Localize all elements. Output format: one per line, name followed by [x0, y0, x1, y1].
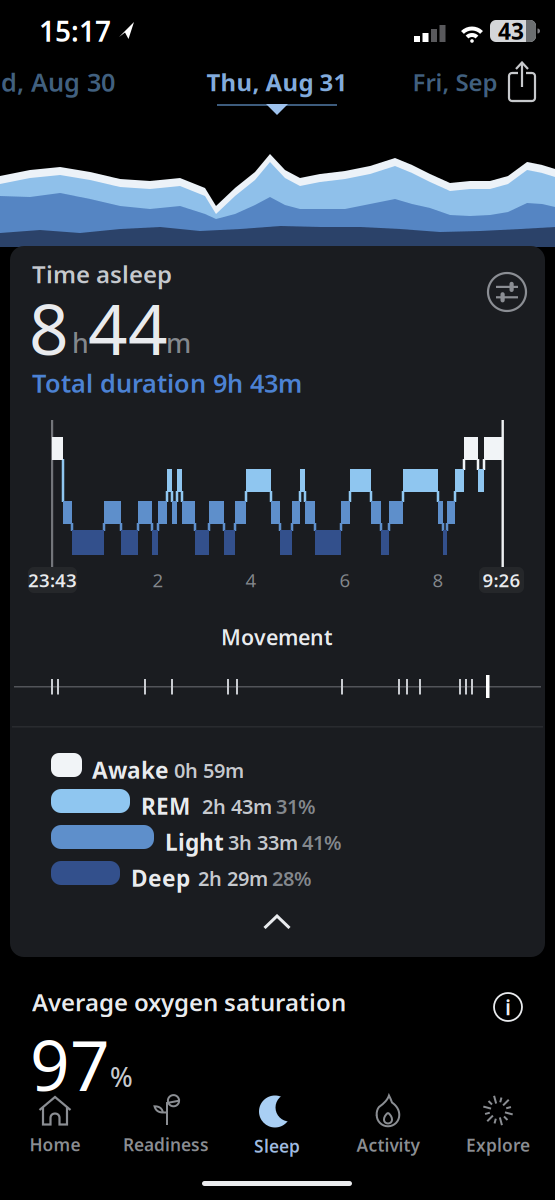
button[interactable] — [263, 914, 291, 929]
button[interactable]: Sleep — [225, 1092, 329, 1157]
staticText: Awake — [92, 755, 169, 785]
button[interactable]: Fri, Sep — [412, 66, 497, 98]
button[interactable]: d, Aug 30 — [1, 65, 115, 99]
staticText: 28% — [272, 865, 312, 892]
staticText: 9:26 — [482, 568, 520, 592]
staticText: 41% — [302, 829, 342, 856]
staticText: 6 — [339, 568, 350, 592]
staticText: Time asleep — [32, 258, 172, 290]
staticText: Fri, Sep — [412, 66, 497, 98]
button[interactable]: Home — [3, 1094, 107, 1156]
button[interactable]: Activity — [336, 1093, 440, 1156]
staticText: m — [166, 325, 191, 360]
button[interactable]: Thu, Aug 31 — [206, 66, 347, 98]
staticText: 15:17 — [39, 12, 111, 50]
staticText: Explore — [466, 1133, 530, 1156]
staticText: 8 — [29, 282, 69, 374]
staticText: 2 — [152, 568, 163, 592]
staticText: Home — [29, 1133, 80, 1156]
button[interactable]: i — [493, 992, 523, 1022]
staticText: h — [72, 325, 89, 360]
button[interactable] — [505, 61, 539, 103]
staticText: Deep — [131, 863, 190, 893]
staticText: 44 — [88, 282, 168, 374]
staticText: % — [110, 1059, 133, 1094]
button[interactable] — [487, 272, 527, 312]
staticText: 97 — [30, 1018, 110, 1110]
staticText: 3h 33m — [228, 829, 298, 856]
staticText: 43 — [498, 16, 524, 46]
button[interactable]: Readiness — [114, 1094, 218, 1156]
staticText: 0h 59m — [174, 757, 244, 784]
staticText: 2h 43m — [202, 793, 272, 820]
staticText: Total duration 9h 43m — [32, 366, 302, 400]
staticText: Average oxygen saturation — [32, 986, 346, 1018]
staticText: Readiness — [123, 1133, 209, 1156]
staticText: i — [505, 993, 511, 1021]
staticText: 23:43 — [28, 568, 77, 592]
staticText: Light — [165, 827, 224, 857]
staticText: Thu, Aug 31 — [206, 66, 347, 98]
staticText: 4 — [245, 568, 256, 592]
staticText: Movement — [221, 623, 333, 651]
staticText: REM — [141, 791, 190, 821]
staticText: Sleep — [254, 1134, 300, 1157]
staticText: Activity — [356, 1133, 419, 1156]
button[interactable]: Explore — [446, 1093, 550, 1156]
staticText: 31% — [276, 793, 316, 820]
staticText: d, Aug 30 — [1, 65, 115, 99]
staticText: 2h 29m — [198, 865, 268, 892]
staticText: 8 — [432, 568, 443, 592]
